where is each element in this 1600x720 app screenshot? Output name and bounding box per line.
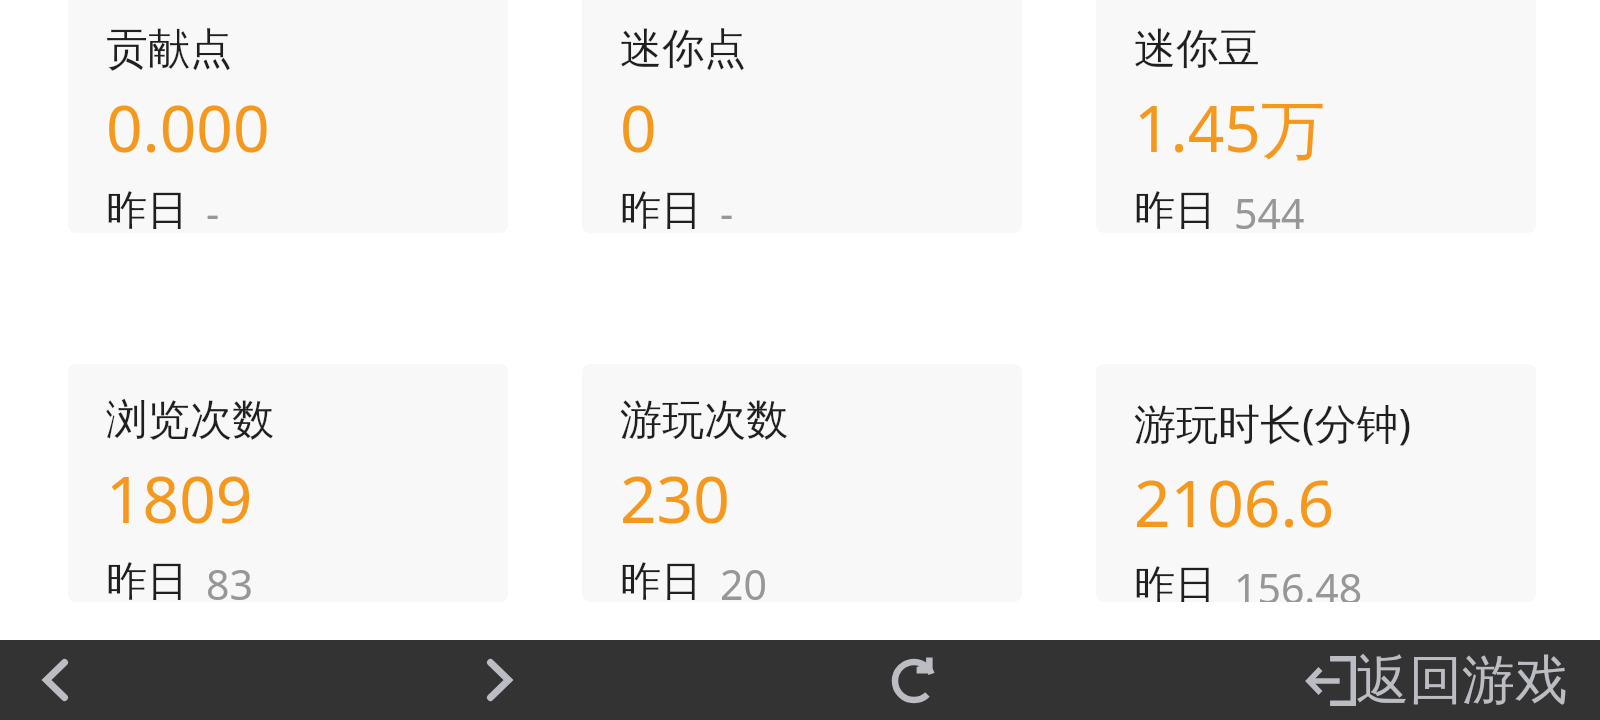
staticText: 0 (620, 84, 657, 171)
staticText: 昨日 (620, 556, 702, 602)
staticText: 昨日 (106, 556, 188, 602)
staticText: 昨日 (1134, 560, 1216, 602)
button[interactable]: Back (15, 640, 95, 720)
button[interactable]: 迷你豆 (1096, 0, 1536, 233)
staticText: 游玩时长(分钟) (1134, 394, 1412, 451)
staticText: 迷你点 (620, 23, 746, 76)
button[interactable]: Forward (459, 640, 539, 720)
staticText: 浏览次数 (106, 394, 274, 447)
staticText: 544 (1234, 185, 1305, 233)
button[interactable]: 浏览次数 (68, 364, 508, 602)
staticText: 1.45万 (1134, 84, 1325, 171)
button[interactable]: 返回游戏 (1300, 647, 1600, 714)
staticText: 昨日 (620, 185, 702, 233)
staticText: - (720, 185, 734, 233)
staticText: 230 (620, 455, 730, 542)
staticText: 20 (720, 556, 767, 602)
staticText: 156.48 (1234, 560, 1363, 602)
button[interactable]: 游玩时长(分钟) (1096, 364, 1536, 602)
staticText: 返回游戏 (1356, 647, 1568, 714)
staticText: 0.000 (106, 84, 270, 171)
button[interactable]: Refresh (876, 639, 956, 719)
button[interactable]: 贡献点 (68, 0, 508, 233)
button[interactable]: 游玩次数 (582, 364, 1022, 602)
button[interactable]: 迷你点 (582, 0, 1022, 233)
staticText: 贡献点 (106, 23, 232, 76)
staticText: 迷你豆 (1134, 23, 1260, 76)
staticText: 昨日 (106, 185, 188, 233)
staticText: 昨日 (1134, 185, 1216, 233)
staticText: 1809 (106, 455, 253, 542)
staticText: - (206, 185, 220, 233)
staticText: 83 (206, 556, 253, 602)
staticText: 2106.6 (1134, 459, 1335, 546)
staticText: 游玩次数 (620, 394, 788, 447)
